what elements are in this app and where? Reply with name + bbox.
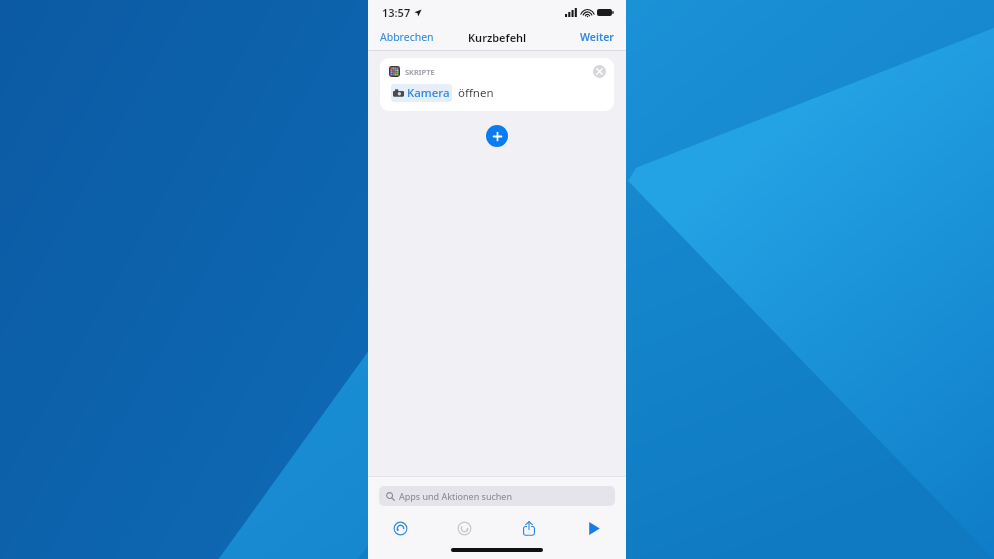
staticText: Apps und Aktionen suchen [399, 490, 512, 502]
button[interactable]: SKRIPTE [380, 58, 614, 111]
button[interactable]: Abbrechen [368, 26, 446, 48]
button[interactable]: Wiederholen [432, 515, 496, 541]
staticText: Kamera [407, 85, 450, 101]
button[interactable]: Widerrufen [368, 515, 432, 541]
staticText: Abbrechen [380, 30, 434, 44]
staticText: 13:57 [382, 5, 411, 20]
button[interactable]: Teilen [496, 515, 561, 541]
staticText: SKRIPTE [405, 67, 435, 77]
button[interactable]: Aktion entfernen [593, 65, 606, 78]
button[interactable]: Weiter [568, 26, 626, 48]
staticText: Weiter [580, 30, 614, 44]
button[interactable]: Aktion hinzufügen [486, 125, 508, 147]
staticText: öffnen [458, 85, 494, 101]
button[interactable]: Apps und Aktionen suchen [379, 486, 615, 506]
staticText: Kurzbefehl [468, 30, 527, 45]
button[interactable]: Ausführen [561, 515, 626, 541]
